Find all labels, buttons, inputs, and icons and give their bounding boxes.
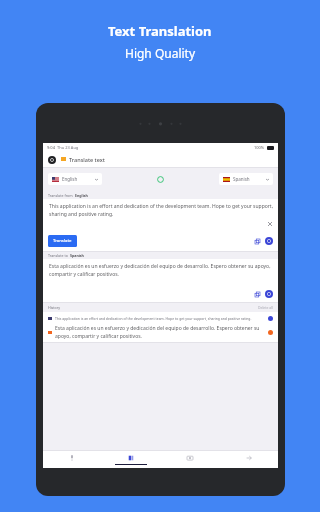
staticText: Thu 23 Aug bbox=[57, 145, 79, 150]
button[interactable]: Voice bbox=[43, 451, 101, 468]
staticText: 9:04 bbox=[47, 145, 55, 150]
staticText: English bbox=[75, 193, 88, 198]
staticText: Spanish bbox=[70, 253, 84, 258]
staticText: Text Translation bbox=[108, 22, 212, 40]
button[interactable]: Camera bbox=[160, 451, 219, 468]
staticText: This application is an effort and dedica… bbox=[49, 203, 274, 218]
button[interactable]: Listen bbox=[265, 237, 273, 245]
button[interactable]: Esta aplicación es un esfuerzo y dedicac… bbox=[43, 325, 278, 339]
button[interactable]: English bbox=[48, 173, 102, 185]
button[interactable]: Copy bbox=[254, 291, 261, 298]
button[interactable]: Translate bbox=[48, 235, 77, 247]
staticText: History bbox=[48, 305, 61, 310]
staticText: High Quality bbox=[125, 45, 196, 61]
staticText: This application is an effort and dedica… bbox=[55, 316, 265, 321]
button[interactable]: This application is an effort and dedica… bbox=[43, 315, 278, 322]
staticText: 100% bbox=[254, 145, 265, 150]
staticText: Delete all bbox=[258, 305, 273, 310]
button[interactable]: Text bbox=[101, 451, 160, 468]
staticText: Translate bbox=[53, 238, 72, 244]
staticText: Esta aplicación es un esfuerzo y dedicac… bbox=[55, 325, 265, 339]
button[interactable]: Copy bbox=[254, 238, 261, 245]
button[interactable]: Menu bbox=[48, 156, 56, 164]
staticText: Spanish bbox=[233, 176, 266, 182]
staticText: Translate to bbox=[48, 253, 68, 258]
staticText: Translate from bbox=[48, 193, 73, 198]
staticText: Esta aplicación es un esfuerzo y dedicac… bbox=[49, 263, 272, 278]
staticText: English bbox=[62, 176, 95, 182]
staticText: Translate text bbox=[69, 156, 105, 163]
button[interactable]: More bbox=[219, 451, 278, 468]
button[interactable]: Swap languages bbox=[155, 174, 166, 185]
button[interactable]: Spanish bbox=[219, 173, 273, 185]
button[interactable]: Listen bbox=[265, 290, 273, 298]
button[interactable]: Clear text bbox=[267, 221, 273, 227]
